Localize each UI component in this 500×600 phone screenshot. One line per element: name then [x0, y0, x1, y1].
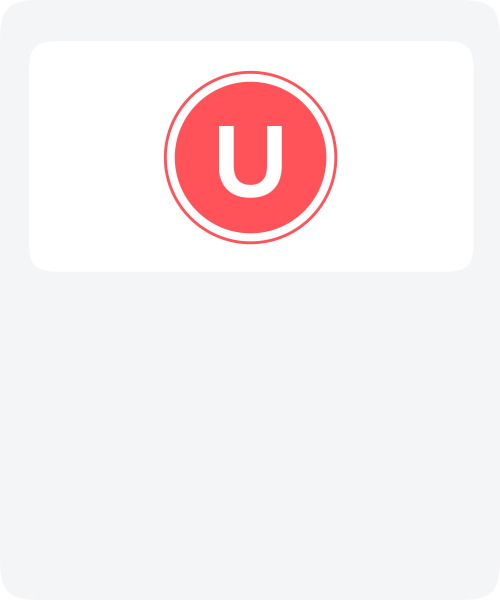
button[interactable]: Profile avatar U [29, 41, 474, 272]
staticText: U [211, 99, 291, 222]
